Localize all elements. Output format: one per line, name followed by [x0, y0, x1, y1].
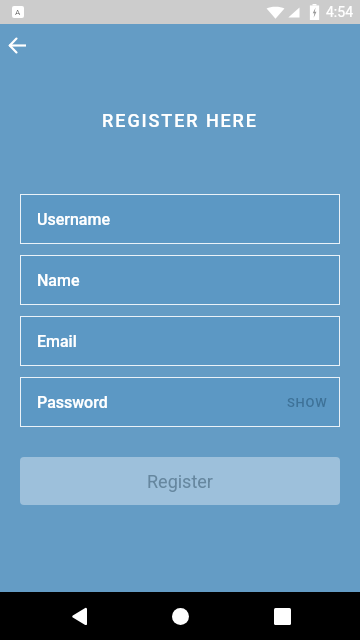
- button[interactable]: Email: [20, 316, 340, 366]
- button[interactable]: Recent apps: [258, 592, 306, 640]
- staticText: A: [15, 8, 21, 17]
- staticText: SHOW: [287, 395, 328, 410]
- button[interactable]: Home: [156, 592, 204, 640]
- staticText: 4:54: [326, 4, 353, 20]
- button[interactable]: Username: [20, 194, 340, 244]
- button[interactable]: Back: [55, 592, 103, 640]
- staticText: Username: [37, 210, 110, 229]
- staticText: Register: [147, 471, 213, 492]
- staticText: Name: [37, 271, 80, 290]
- button[interactable]: Name: [20, 255, 340, 305]
- button[interactable]: Password: [20, 377, 340, 427]
- staticText: Email: [37, 332, 77, 351]
- button[interactable]: Register: [20, 457, 340, 505]
- staticText: Password: [37, 393, 108, 412]
- staticText: REGISTER HERE: [102, 110, 258, 131]
- button[interactable]: Navigate up: [1, 29, 34, 62]
